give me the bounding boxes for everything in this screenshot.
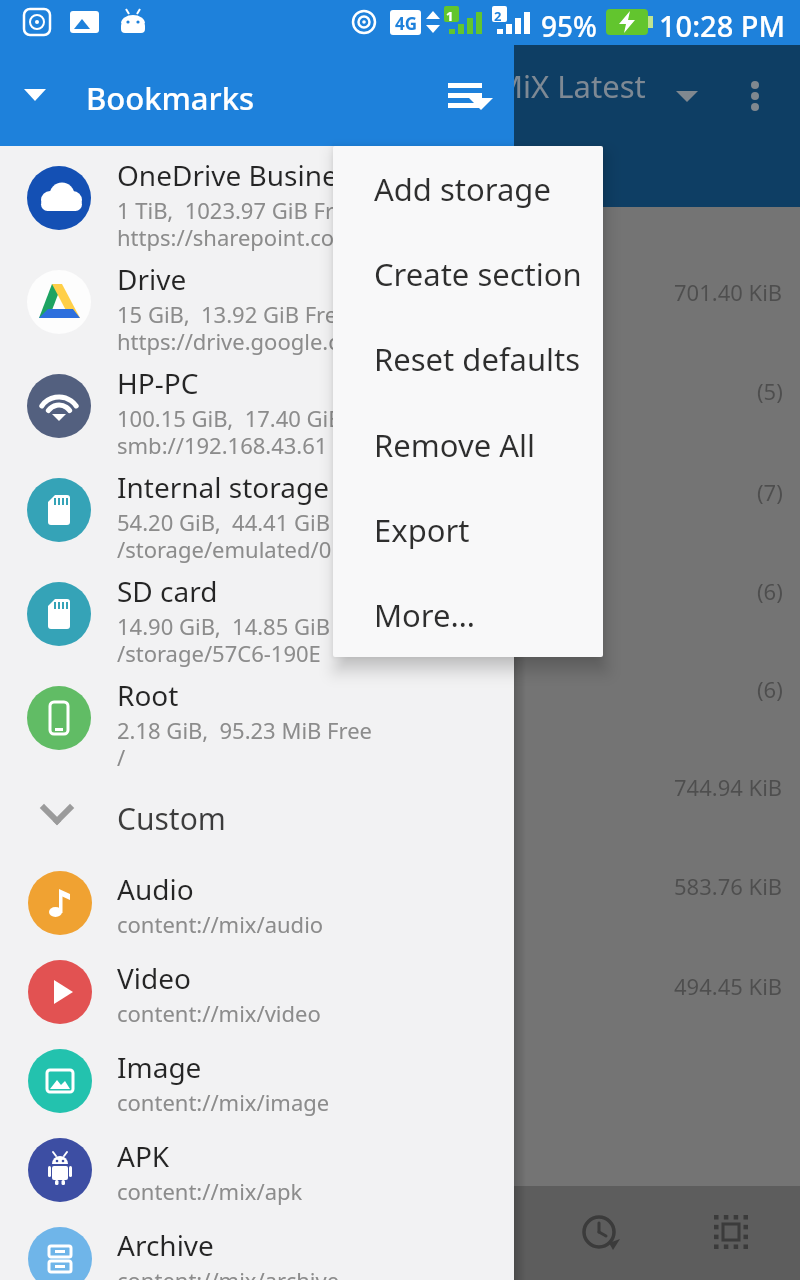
staticText: Create section: [374, 253, 582, 295]
button[interactable]: [0, 354, 514, 458]
button[interactable]: More…: [333, 572, 603, 657]
button[interactable]: Reset defaults: [333, 316, 603, 401]
staticText: https://sharepoint.com: [117, 222, 355, 252]
staticText: 1: [446, 7, 454, 25]
staticText: /storage/emulated/0: [117, 534, 332, 564]
staticText: https://drive.google.com: [117, 326, 373, 356]
staticText: 583.76 KiB: [674, 871, 783, 901]
staticText: 2: [494, 7, 502, 25]
button[interactable]: [0, 947, 514, 1036]
staticText: (6): [757, 674, 783, 704]
staticText: /storage/57C6-190E: [117, 638, 321, 668]
button[interactable]: Create section: [333, 231, 603, 316]
staticText: 10:28 PM: [659, 6, 786, 45]
staticText: (5): [757, 376, 783, 406]
staticText: 95%: [541, 7, 597, 45]
button[interactable]: [692, 1195, 770, 1273]
staticText: (7): [757, 477, 783, 507]
staticText: content://mix/video: [117, 998, 321, 1028]
staticText: /: [117, 742, 126, 772]
button[interactable]: [0, 250, 514, 354]
staticText: Add storage: [374, 168, 551, 210]
button[interactable]: [0, 1125, 514, 1214]
button[interactable]: [0, 562, 514, 666]
staticText: Reset defaults: [374, 338, 581, 380]
staticText: 494.45 KiB: [674, 971, 783, 1001]
staticText: Remove All: [374, 424, 535, 466]
button[interactable]: Add storage: [333, 146, 603, 231]
staticText: Bookmarks: [86, 77, 255, 119]
button[interactable]: [620, 60, 730, 130]
button[interactable]: Export: [333, 487, 603, 572]
staticText: More…: [374, 594, 476, 636]
staticText: OneDrive Business: [117, 156, 365, 194]
staticText: Archive: [117, 1226, 214, 1264]
button[interactable]: Remove All: [333, 402, 603, 487]
staticText: Internal storage: [117, 468, 329, 506]
staticText: Export: [374, 509, 470, 551]
staticText: APK: [117, 1137, 170, 1175]
staticText: content://mix/image: [117, 1087, 330, 1117]
staticText: Drive: [117, 260, 187, 298]
staticText: content://mix/apk: [117, 1176, 303, 1206]
button[interactable]: Custom: [0, 770, 514, 858]
button[interactable]: [0, 858, 514, 947]
staticText: Root: [117, 676, 179, 714]
staticText: MiX Latest: [495, 65, 646, 107]
button[interactable]: Bookmarks: [0, 45, 514, 146]
staticText: 100.15 GiB, 17.40 GiB Free: [117, 403, 394, 433]
button[interactable]: [725, 60, 785, 130]
button[interactable]: [0, 146, 514, 250]
staticText: content://mix/archive: [117, 1265, 340, 1280]
button[interactable]: [0, 458, 514, 562]
staticText: 4G: [395, 12, 418, 35]
staticText: (6): [757, 576, 783, 606]
staticText: 14.90 GiB, 14.85 GiB Free: [117, 611, 381, 641]
staticText: 54.20 GiB, 44.41 GiB Free: [117, 507, 381, 537]
staticText: 15 GiB, 13.92 GiB Free: [117, 299, 350, 329]
staticText: content://mix/audio: [117, 909, 324, 939]
staticText: Custom: [117, 798, 226, 839]
staticText: Image: [117, 1048, 202, 1086]
button[interactable]: [0, 1036, 514, 1125]
staticText: 2.18 GiB, 95.23 MiB Free: [117, 715, 372, 745]
button[interactable]: [0, 666, 514, 770]
button[interactable]: [430, 60, 505, 132]
staticText: Audio: [117, 870, 194, 908]
staticText: SD card: [117, 572, 218, 610]
staticText: 744.94 KiB: [674, 772, 783, 802]
staticText: Video: [117, 959, 191, 997]
staticText: 701.40 KiB: [674, 277, 783, 307]
staticText: 1 TiB, 1023.97 GiB Free: [117, 195, 359, 225]
button[interactable]: [560, 1195, 638, 1273]
staticText: smb://192.168.43.61: [117, 430, 328, 460]
staticText: HP-PC: [117, 364, 199, 402]
button[interactable]: [0, 1214, 514, 1280]
